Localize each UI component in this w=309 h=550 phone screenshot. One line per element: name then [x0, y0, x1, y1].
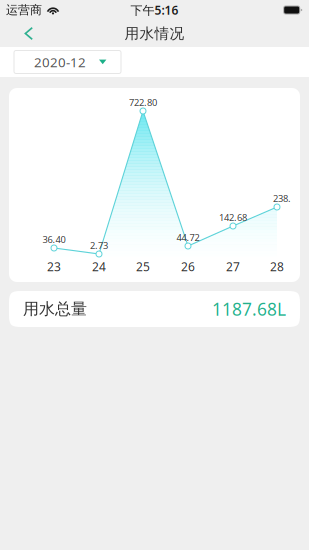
button[interactable]: Back: [7, 22, 51, 45]
staticText: 23: [47, 258, 61, 274]
staticText: 26: [181, 258, 195, 274]
staticText: 722.80: [129, 96, 157, 109]
staticText: 142.68: [219, 211, 247, 224]
staticText: 2020-12: [34, 53, 86, 71]
staticText: 27: [226, 258, 240, 274]
staticText: 下午5:16: [130, 2, 178, 18]
staticText: 28: [270, 258, 284, 274]
staticText: 25: [136, 258, 150, 274]
staticText: 238.: [273, 192, 291, 205]
staticText: 用水情况: [124, 24, 184, 42]
staticText: 用水总量: [23, 299, 87, 319]
staticText: 36.40: [42, 233, 65, 246]
staticText: 2.73: [90, 239, 108, 252]
button[interactable]: 2020-12: [14, 50, 121, 73]
staticText: 运营商: [6, 3, 42, 17]
staticText: 24: [92, 258, 106, 274]
staticText: 1187.68L: [212, 297, 286, 320]
staticText: 44.72: [176, 231, 199, 244]
